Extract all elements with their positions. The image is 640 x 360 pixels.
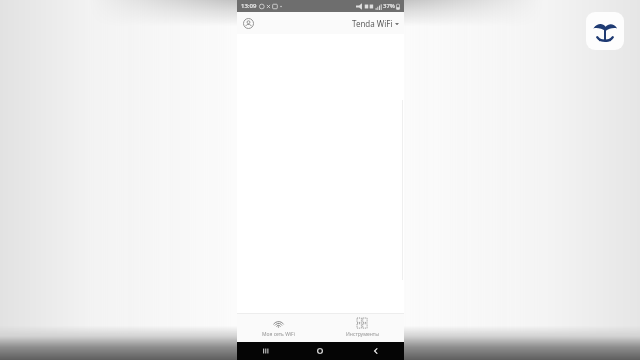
staticText: Моя сеть WiFi	[262, 331, 295, 338]
staticText: 13:09	[241, 2, 257, 10]
button[interactable]: Account	[240, 15, 256, 31]
button[interactable]: Моя сеть WiFi	[237, 313, 320, 342]
button[interactable]: Инструменты	[320, 313, 404, 342]
button[interactable]: Recent apps	[237, 342, 292, 360]
button[interactable]: Back	[348, 342, 404, 360]
staticText: 37%	[383, 2, 395, 10]
button[interactable]: Home	[292, 342, 348, 360]
button[interactable]: Tenda WiFi	[350, 16, 401, 31]
staticText: Tenda WiFi	[352, 18, 393, 29]
staticText: Инструменты	[346, 331, 379, 338]
